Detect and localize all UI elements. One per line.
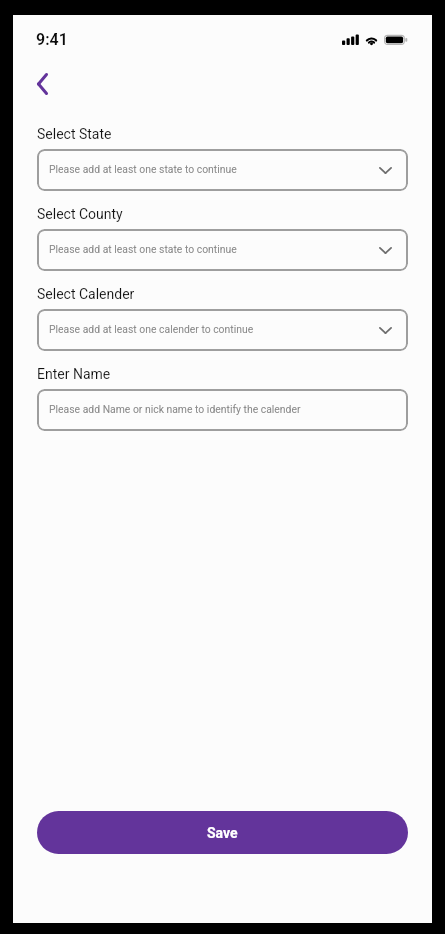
staticText: Please add at least one state to continu… (49, 163, 237, 175)
staticText: Please add Name or nick name to identify… (49, 403, 301, 415)
button[interactable]: Save (37, 811, 408, 854)
button[interactable]: Please add at least one calender to cont… (37, 309, 408, 351)
button[interactable]: Please add Name or nick name to identify… (37, 389, 408, 431)
staticText: Select Calender (37, 286, 135, 302)
button[interactable]: Please add at least one state to continu… (37, 229, 408, 271)
staticText: Enter Name (37, 366, 111, 382)
staticText: Select State (37, 126, 112, 142)
staticText: Please add at least one state to continu… (49, 243, 237, 255)
button[interactable]: Back (21, 63, 63, 105)
button[interactable]: Please add at least one state to continu… (37, 149, 408, 191)
staticText: 9:41 (36, 30, 68, 49)
staticText: Please add at least one calender to cont… (49, 323, 254, 335)
other: Expand Select County (379, 247, 392, 254)
staticText: Save (207, 825, 238, 841)
other: Expand Select State (379, 167, 392, 174)
other: Expand Select Calender (379, 327, 392, 334)
staticText: Select County (37, 206, 123, 222)
